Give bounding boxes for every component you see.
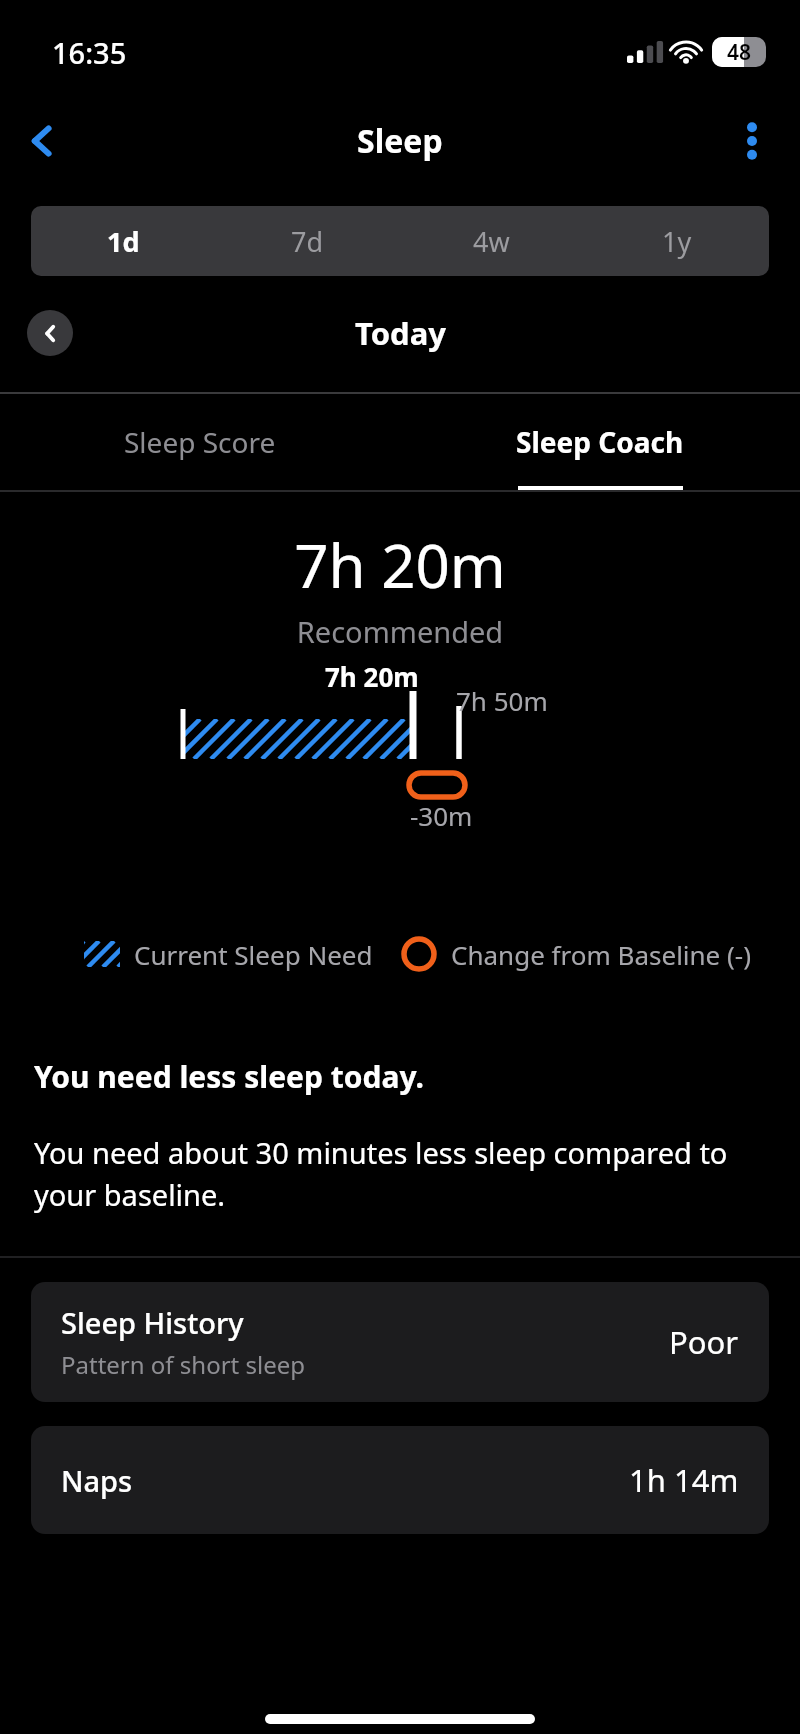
staticText: Sleep Score <box>124 423 276 461</box>
staticText: 7h 20m <box>0 524 800 606</box>
staticText: 48 <box>727 38 752 67</box>
staticText: 4w <box>473 223 510 260</box>
button[interactable]: Sleep Coach <box>400 394 800 490</box>
button[interactable]: Sleep History <box>31 1282 769 1402</box>
staticText: Today <box>355 312 446 354</box>
staticText: 1h 14m <box>629 1459 739 1501</box>
staticText: 7d <box>291 223 324 260</box>
button[interactable]: Previous day <box>27 310 73 356</box>
staticText: 1y <box>662 223 692 260</box>
staticText: Change from Baseline (-) <box>451 937 752 972</box>
button[interactable]: Back <box>12 111 72 171</box>
staticText: 1d <box>107 223 140 260</box>
button[interactable]: Sleep Score <box>0 394 400 490</box>
button[interactable]: 1d <box>31 206 215 276</box>
staticText: Naps <box>61 1461 133 1500</box>
button[interactable]: 7d <box>215 206 399 276</box>
staticText: Pattern of short sleep <box>61 1348 306 1381</box>
staticText: Poor <box>669 1321 739 1363</box>
staticText: Sleep History <box>61 1303 244 1342</box>
staticText: Sleep Coach <box>516 423 684 461</box>
staticText: Recommended <box>0 612 800 651</box>
staticText: 16:35 <box>52 33 127 72</box>
staticText: -30m <box>410 798 473 833</box>
staticText: Current Sleep Need <box>134 937 373 972</box>
button[interactable]: More options <box>722 111 782 171</box>
staticText: 7h 20m <box>325 659 419 694</box>
button[interactable]: Naps <box>31 1426 769 1534</box>
staticText: 7h 50m <box>456 683 548 718</box>
button[interactable]: 1y <box>584 206 769 276</box>
staticText: Sleep <box>357 119 443 163</box>
staticText: You need less sleep today. <box>34 1056 424 1097</box>
button[interactable]: 4w <box>399 206 584 276</box>
staticText: You need about 30 minutes less sleep com… <box>34 1133 766 1214</box>
